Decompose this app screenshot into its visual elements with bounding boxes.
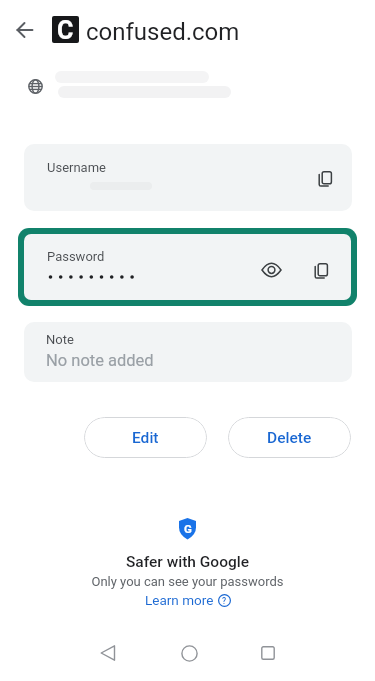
staticText: Safer with Google (0, 553, 375, 571)
staticText: confused.com (86, 18, 240, 46)
button[interactable] (251, 250, 291, 290)
button[interactable] (169, 633, 209, 673)
staticText: Edit (132, 429, 159, 447)
staticText: Password (47, 249, 105, 264)
staticText: Only you can see your passwords (0, 574, 375, 589)
button[interactable]: Delete (228, 417, 351, 458)
button[interactable]: Edit (84, 417, 207, 458)
button[interactable] (88, 633, 128, 673)
staticText: No note added (46, 351, 154, 370)
button[interactable]: Password (24, 234, 351, 300)
staticText: ? (222, 596, 227, 606)
staticText: Learn more (145, 592, 214, 608)
button[interactable] (301, 251, 341, 291)
staticText: G (184, 522, 192, 535)
button[interactable] (248, 633, 288, 673)
staticText: C (57, 16, 74, 43)
button[interactable]: Learn more (0, 592, 375, 608)
button[interactable]: Username (24, 144, 352, 211)
staticText: Delete (267, 429, 312, 447)
staticText: Username (47, 160, 106, 175)
staticText: Note (46, 332, 74, 347)
button[interactable] (12, 18, 52, 42)
